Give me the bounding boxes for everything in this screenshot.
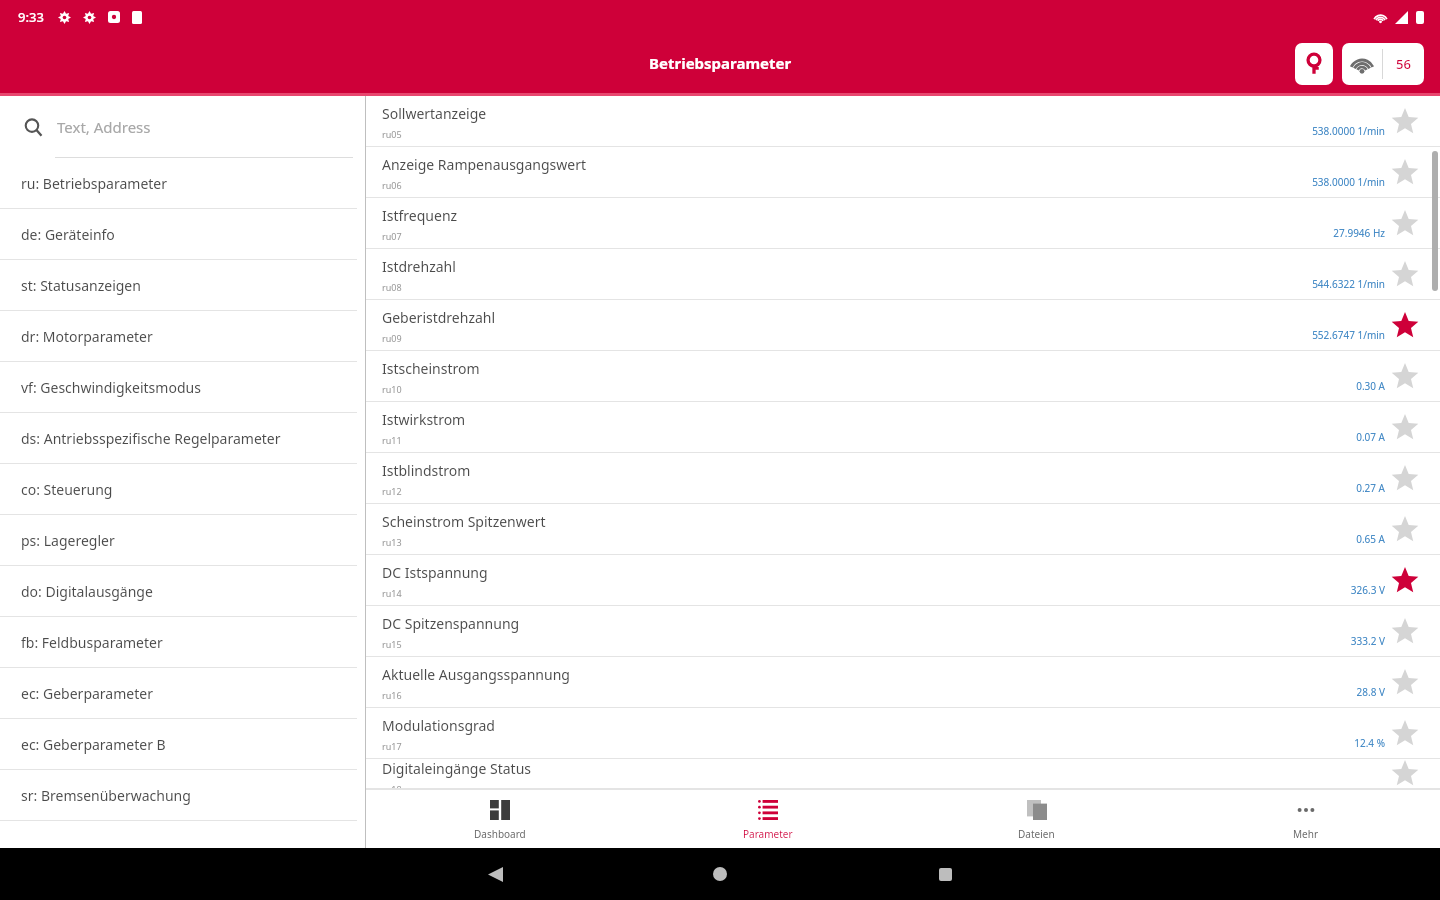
button[interactable]: Favorit	[1385, 459, 1425, 499]
staticText: ec: Geberparameter B	[21, 735, 166, 754]
button[interactable]: Dateien	[902, 789, 1171, 851]
button[interactable]: Favorit	[1385, 153, 1425, 193]
staticText: de: Geräteinfo	[21, 225, 115, 244]
staticText: Parameter	[743, 827, 793, 841]
staticText: 0.30 A	[1356, 379, 1385, 393]
button[interactable]: do: Digitalausgänge	[0, 566, 365, 617]
button[interactable]: Modulationsgrad	[366, 708, 1440, 759]
staticText: Geberistdrehzahl	[382, 308, 496, 327]
staticText: ru17	[382, 740, 402, 752]
button[interactable]: Verbindung 56	[1342, 43, 1424, 85]
staticText: ec: Geberparameter	[21, 684, 153, 703]
staticText: 56	[1396, 55, 1411, 73]
button[interactable]: ru: Betriebsparameter	[0, 158, 365, 209]
staticText: 28.8 V	[1356, 685, 1385, 699]
button[interactable]: sr: Bremsenüberwachung	[0, 770, 365, 821]
staticText: ru16	[382, 689, 402, 701]
staticText: DC Spitzenspannung	[382, 614, 520, 633]
button[interactable]: ec: Geberparameter	[0, 668, 365, 719]
button[interactable]: Schlüssel	[1295, 43, 1333, 85]
staticText: Aktuelle Ausgangsspannung	[382, 665, 570, 684]
button[interactable]: Mehr	[1171, 789, 1440, 851]
button[interactable]: ec: Geberparameter B	[0, 719, 365, 770]
button[interactable]: Favorit	[1385, 714, 1425, 754]
staticText: Betriebsparameter	[649, 53, 792, 73]
staticText: 333.2 V	[1350, 634, 1385, 648]
staticText: ds: Antriebsspezifische Regelparameter	[21, 429, 281, 448]
button[interactable]: Aktuelle Ausgangsspannung	[366, 657, 1440, 708]
button[interactable]: Favorit	[1385, 255, 1425, 295]
button[interactable]: Istfrequenz	[366, 198, 1440, 249]
button[interactable]: Istdrehzahl	[366, 249, 1440, 300]
staticText: co: Steuerung	[21, 480, 113, 499]
staticText: 12.4 %	[1354, 736, 1385, 750]
staticText: 552.6747 1/min	[1312, 328, 1385, 342]
button[interactable]: Favorit	[1385, 612, 1425, 652]
button[interactable]: Favorit	[1385, 306, 1425, 346]
staticText: 9:33	[18, 8, 44, 26]
staticText: Istwirkstrom	[382, 410, 466, 429]
button[interactable]: Dashboard	[366, 789, 634, 851]
button[interactable]: dr: Motorparameter	[0, 311, 365, 362]
button[interactable]: Istblindstrom	[366, 453, 1440, 504]
staticText: fb: Feldbusparameter	[21, 633, 163, 652]
staticText: 27.9946 Hz	[1333, 226, 1385, 240]
staticText: ru09	[382, 332, 402, 344]
staticText: Dashboard	[474, 827, 526, 841]
button[interactable]: Parameter	[634, 789, 902, 851]
button[interactable]: fb: Feldbusparameter	[0, 617, 365, 668]
staticText: sr: Bremsenüberwachung	[21, 786, 191, 805]
staticText: 538.0000 1/min	[1312, 175, 1385, 189]
button[interactable]: Anzeige Rampenausgangswert	[366, 147, 1440, 198]
staticText: Text, Address	[57, 117, 151, 137]
button[interactable]: DC Istspannung	[366, 555, 1440, 606]
staticText: Scheinstrom Spitzenwert	[382, 512, 546, 531]
staticText: DC Istspannung	[382, 563, 488, 582]
staticText: Istblindstrom	[382, 461, 471, 480]
button[interactable]: Favorit	[1385, 561, 1425, 601]
staticText: ru12	[382, 485, 402, 497]
button[interactable]: vf: Geschwindigkeitsmodus	[0, 362, 365, 413]
staticText: st: Statusanzeigen	[21, 276, 141, 295]
staticText: ru: Betriebsparameter	[21, 174, 168, 193]
staticText: Digitaleingänge Status	[382, 759, 532, 778]
button[interactable]: Favorit	[1385, 663, 1425, 703]
staticText: ru07	[382, 230, 402, 242]
button[interactable]: Übersicht	[930, 859, 960, 889]
staticText: Anzeige Rampenausgangswert	[382, 155, 587, 174]
staticText: Sollwertanzeige	[382, 104, 487, 123]
button[interactable]: Digitaleingänge Status	[366, 759, 1440, 789]
staticText: 0.27 A	[1356, 481, 1385, 495]
button[interactable]: ps: Lageregler	[0, 515, 365, 566]
staticText: do: Digitalausgänge	[21, 582, 153, 601]
button[interactable]: Favorit	[1385, 759, 1425, 789]
button[interactable]: co: Steuerung	[0, 464, 365, 515]
button[interactable]: Startseite	[705, 859, 735, 889]
button[interactable]: Istscheinstrom	[366, 351, 1440, 402]
button[interactable]: Favorit	[1385, 102, 1425, 142]
button[interactable]: ds: Antriebsspezifische Regelparameter	[0, 413, 365, 464]
button[interactable]: Favorit	[1385, 204, 1425, 244]
staticText: 0.65 A	[1356, 532, 1385, 546]
button[interactable]: Scheinstrom Spitzenwert	[366, 504, 1440, 555]
staticText: Dateien	[1018, 827, 1055, 841]
button[interactable]: st: Statusanzeigen	[0, 260, 365, 311]
button[interactable]: Istwirkstrom	[366, 402, 1440, 453]
staticText: Istfrequenz	[382, 206, 458, 225]
staticText: ru18	[382, 783, 402, 789]
staticText: vf: Geschwindigkeitsmodus	[21, 378, 201, 397]
staticText: 0.07 A	[1356, 430, 1385, 444]
staticText: 544.6322 1/min	[1312, 277, 1385, 291]
button[interactable]: Favorit	[1385, 408, 1425, 448]
button[interactable]: Favorit	[1385, 510, 1425, 550]
button[interactable]: Favorit	[1385, 357, 1425, 397]
button[interactable]: DC Spitzenspannung	[366, 606, 1440, 657]
button[interactable]: Zurück	[480, 859, 510, 889]
staticText: 326.3 V	[1350, 583, 1385, 597]
staticText: 538.0000 1/min	[1312, 124, 1385, 138]
staticText: ps: Lageregler	[21, 531, 115, 550]
staticText: ru06	[382, 179, 402, 191]
button[interactable]: de: Geräteinfo	[0, 209, 365, 260]
button[interactable]: Sollwertanzeige	[366, 96, 1440, 147]
button[interactable]: Geberistdrehzahl	[366, 300, 1440, 351]
